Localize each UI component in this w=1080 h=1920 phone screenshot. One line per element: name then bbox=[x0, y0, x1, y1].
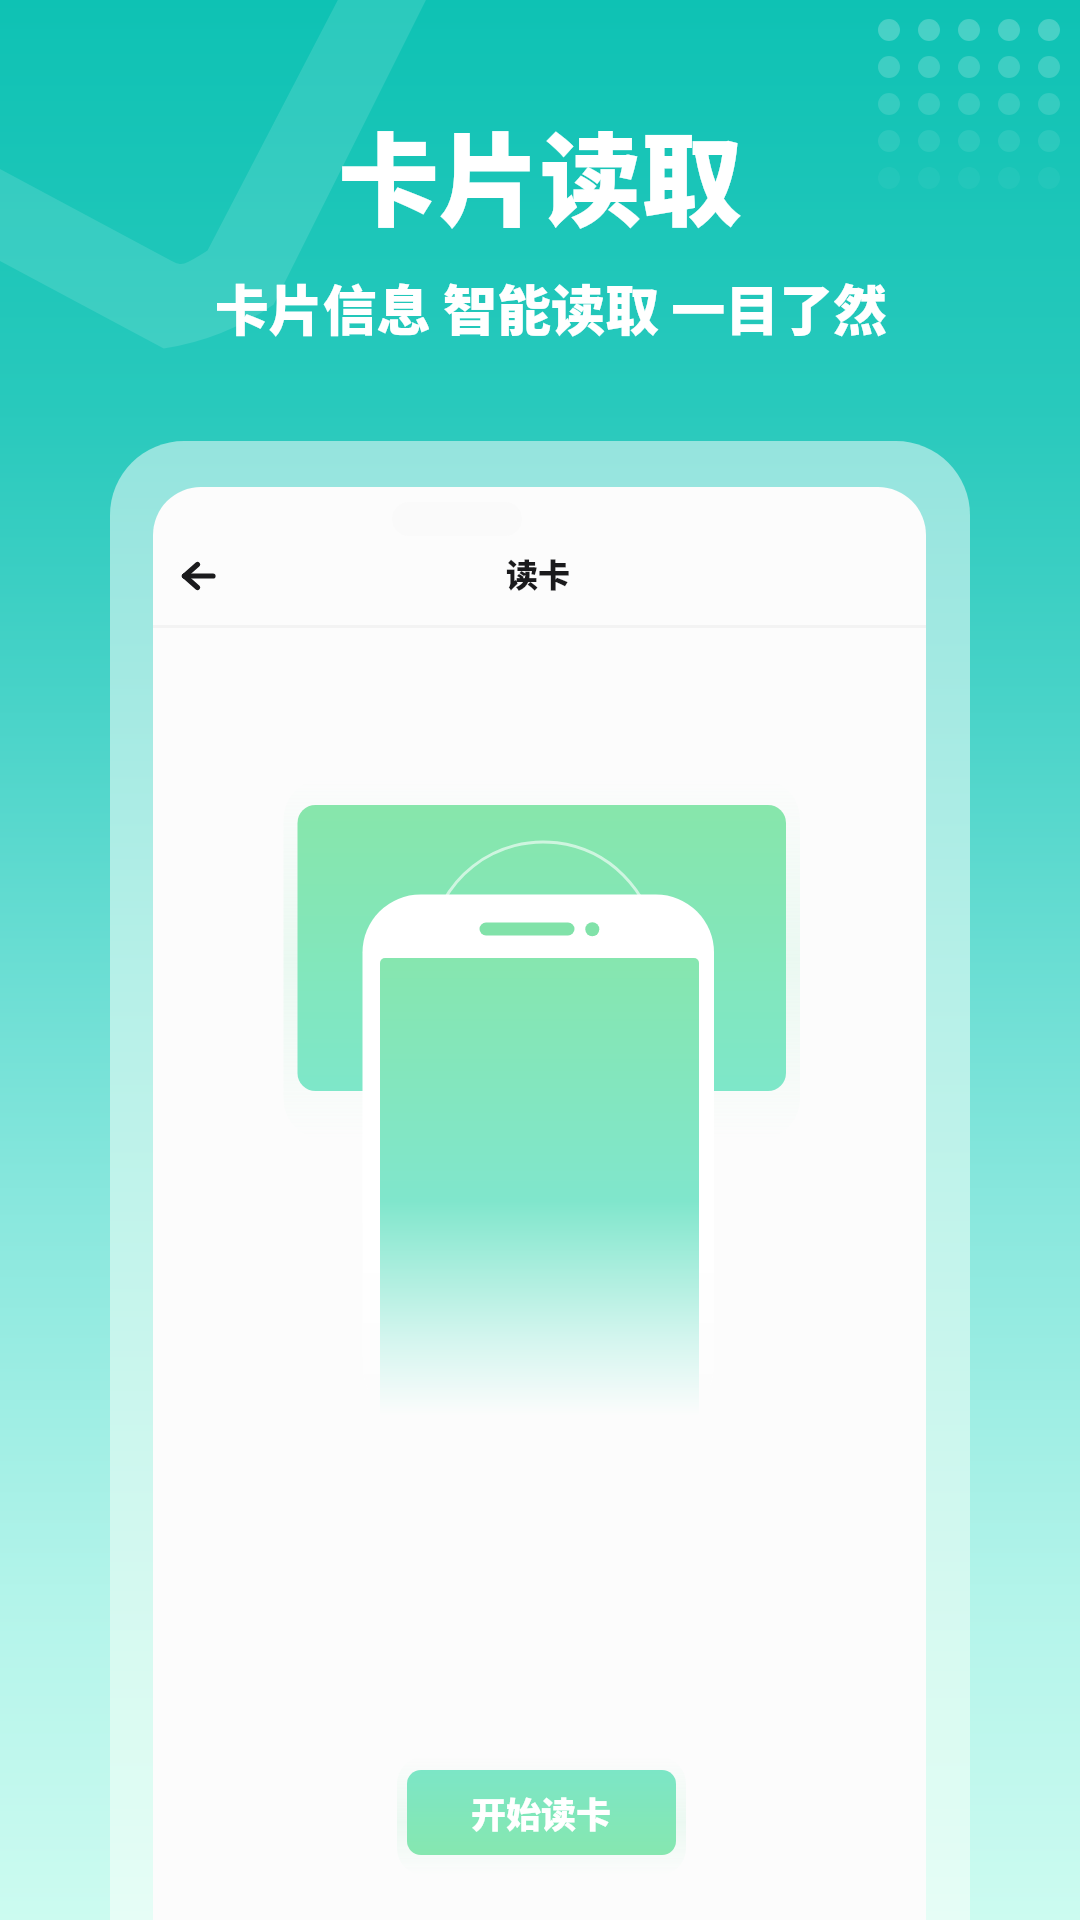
staticText: 卡片读取 bbox=[0, 101, 1080, 247]
staticText: 卡片信息 智能读取 一目了然 bbox=[11, 268, 1080, 346]
button[interactable]: 开始读卡 bbox=[407, 1770, 676, 1855]
staticText: 开始读卡 bbox=[471, 1787, 612, 1838]
staticText: 读卡 bbox=[506, 550, 571, 596]
button[interactable]: Back bbox=[170, 547, 228, 605]
